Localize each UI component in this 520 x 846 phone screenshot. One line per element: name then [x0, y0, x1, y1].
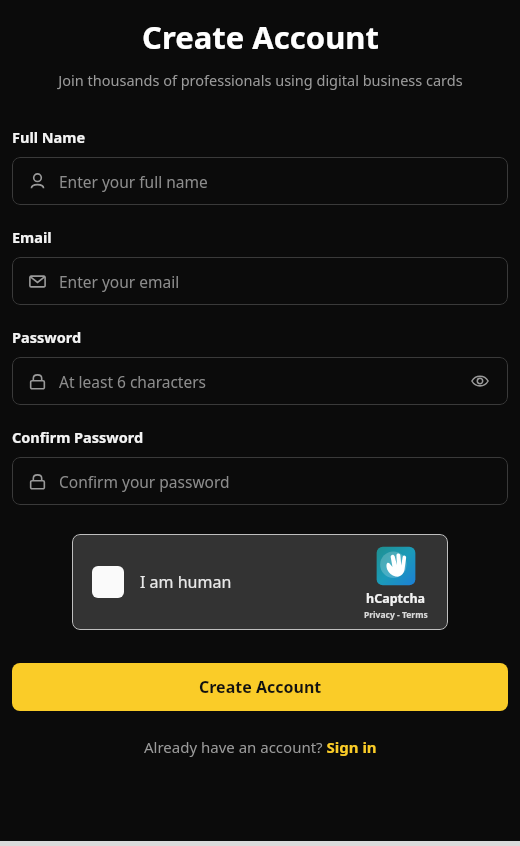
button[interactable]: I am human checkbox: [92, 566, 124, 598]
staticText: Already have an account? Sign in: [144, 737, 377, 757]
staticText: Enter your email: [59, 271, 180, 292]
staticText: Enter your full name: [59, 171, 208, 192]
staticText: Create Account: [199, 676, 322, 698]
button[interactable]: Enter your full name: [12, 157, 508, 205]
button[interactable]: Enter your email: [12, 257, 508, 305]
button[interactable]: Confirm your password: [12, 457, 508, 505]
button[interactable]: Show password: [468, 369, 492, 393]
button[interactable]: Already have an account? Sign in: [144, 737, 377, 757]
staticText: Create Account: [142, 16, 379, 58]
staticText: hCaptcha: [366, 590, 426, 607]
staticText: I am human: [140, 571, 232, 593]
staticText: Confirm your password: [59, 471, 230, 492]
button[interactable]: Create Account: [12, 663, 508, 711]
staticText: Password: [12, 327, 82, 347]
staticText: Privacy - Terms: [364, 609, 428, 621]
staticText: Email: [12, 227, 52, 247]
button[interactable]: I am human checkbox: [72, 534, 448, 630]
staticText: Full Name: [12, 127, 86, 147]
staticText: At least 6 characters: [59, 371, 207, 392]
button[interactable]: At least 6 characters: [12, 357, 508, 405]
staticText: Join thousands of professionals using di…: [58, 70, 463, 90]
staticText: Confirm Password: [12, 427, 144, 447]
